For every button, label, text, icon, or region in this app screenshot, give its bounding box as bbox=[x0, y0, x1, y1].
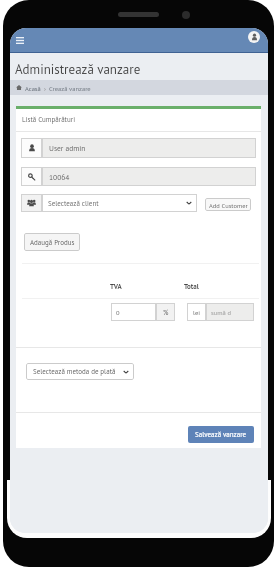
staticText: lei bbox=[193, 308, 200, 316]
staticText: sumă d bbox=[211, 308, 231, 316]
button[interactable]: Selectează client bbox=[42, 194, 197, 212]
staticText: Total bbox=[184, 282, 199, 291]
staticText: Selectează client bbox=[48, 199, 99, 208]
staticText: Listă Cumpărături bbox=[22, 115, 76, 124]
button[interactable]: Menu bbox=[12, 32, 28, 49]
staticText: Adaugă Produs bbox=[30, 238, 75, 247]
staticText: › bbox=[44, 84, 46, 92]
staticText: Add Customer bbox=[209, 201, 248, 209]
staticText: Salvează vanzare bbox=[195, 430, 247, 439]
staticText: 10064 bbox=[49, 172, 70, 182]
staticText: Selectează metoda de plată bbox=[33, 367, 116, 376]
staticText: % bbox=[163, 308, 169, 317]
button[interactable]: Add Customer bbox=[205, 198, 251, 211]
button[interactable]: Adaugă Produs bbox=[24, 233, 80, 251]
staticText: TVA bbox=[110, 282, 122, 291]
button[interactable]: Selectează metoda de plată bbox=[26, 363, 134, 380]
staticText: 0 bbox=[116, 308, 120, 316]
staticText: Acasă bbox=[25, 84, 41, 92]
staticText: User admin bbox=[49, 143, 86, 153]
staticText: Administrează vanzare bbox=[15, 61, 141, 78]
button[interactable]: Account bbox=[248, 31, 260, 43]
staticText: Crează vanzare bbox=[49, 84, 91, 92]
button[interactable]: Salvează vanzare bbox=[188, 426, 254, 443]
